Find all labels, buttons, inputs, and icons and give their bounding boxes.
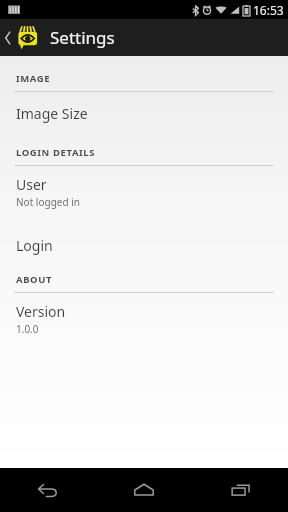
button[interactable]: Image Size (0, 92, 288, 132)
button[interactable]: Back (0, 468, 96, 512)
staticText: IMAGE (16, 72, 51, 85)
staticText: Login (16, 236, 53, 255)
staticText: 16:53 (253, 2, 284, 18)
staticText: User (16, 175, 47, 194)
button[interactable]: Version (0, 293, 288, 342)
staticText: 1.0.0 (16, 322, 39, 336)
staticText: Image Size (16, 104, 88, 123)
button[interactable]: Navigate up (0, 19, 41, 56)
staticText: Version (16, 302, 66, 321)
button[interactable]: User (0, 166, 288, 215)
button[interactable]: Login (0, 227, 288, 261)
button[interactable]: Home (96, 468, 192, 512)
staticText: ABOUT (16, 273, 53, 286)
staticText: Not logged in (16, 195, 80, 209)
button[interactable]: Recent apps (192, 468, 288, 512)
staticText: LOGIN DETAILS (16, 146, 96, 159)
staticText: Settings (50, 26, 115, 49)
